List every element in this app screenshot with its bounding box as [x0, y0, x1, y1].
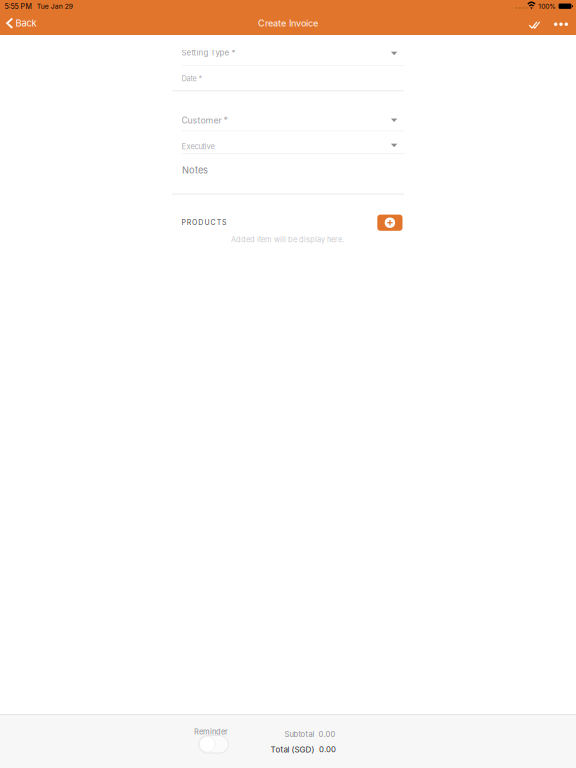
staticText: 5:55 PM: [5, 2, 32, 11]
staticText: Date *: [181, 74, 202, 83]
button[interactable]: Setting Type *: [181, 42, 404, 65]
staticText: Tue Jan 29: [37, 2, 73, 10]
staticText: 0.00: [319, 745, 336, 754]
button[interactable]: Reminder: [199, 736, 228, 753]
staticText: Reminder: [194, 727, 228, 736]
staticText: Back: [16, 18, 37, 29]
button[interactable]: Notes: [181, 155, 404, 193]
button[interactable]: Back: [0, 12, 45, 34]
button[interactable]: More options: [548, 13, 574, 35]
staticText: Customer *: [181, 115, 227, 126]
staticText: Total (SGD): [271, 745, 315, 754]
button[interactable]: Save invoice: [523, 14, 545, 36]
staticText: Added item will be display here.: [231, 235, 344, 244]
staticText: Create Invoice: [258, 18, 318, 29]
staticText: 0.00: [319, 730, 336, 739]
staticText: Subtotal: [285, 730, 315, 739]
staticText: Setting Type *: [181, 48, 235, 57]
staticText: PRODUCTS: [181, 218, 226, 227]
staticText: Notes: [182, 165, 208, 176]
button[interactable]: Customer *: [181, 104, 404, 130]
button[interactable]: Executive: [181, 131, 404, 153]
staticText: 100%: [538, 2, 556, 10]
button[interactable]: Add product: [377, 215, 402, 231]
staticText: Executive: [181, 142, 214, 151]
button[interactable]: Date *: [181, 66, 404, 90]
